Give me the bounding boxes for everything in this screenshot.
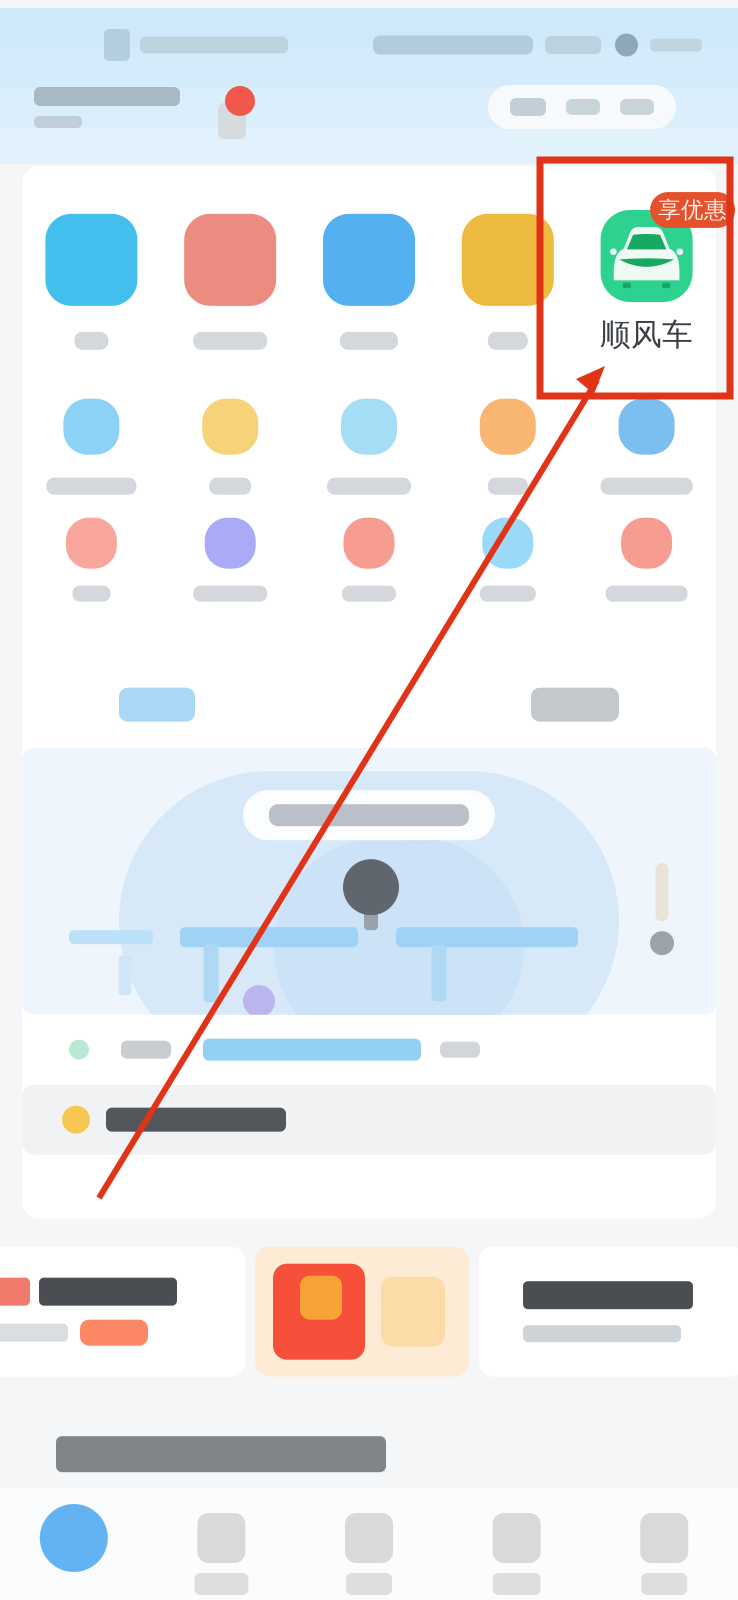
- button[interactable]: 享优惠: [577, 210, 716, 354]
- button[interactable]: [438, 399, 577, 495]
- button[interactable]: [0, 1247, 245, 1377]
- button[interactable]: [22, 399, 161, 495]
- button[interactable]: [577, 518, 716, 602]
- button[interactable]: [438, 214, 577, 350]
- staticText: 顺风车: [600, 316, 693, 354]
- button[interactable]: [300, 399, 438, 495]
- button[interactable]: [300, 518, 438, 602]
- button[interactable]: [255, 1247, 469, 1377]
- button[interactable]: [438, 518, 577, 602]
- button[interactable]: Orders: [295, 1488, 443, 1600]
- staticText: 享优惠: [658, 196, 727, 224]
- button[interactable]: [479, 1247, 738, 1377]
- button[interactable]: [22, 518, 161, 602]
- button[interactable]: [161, 399, 300, 495]
- button[interactable]: Home: [0, 1488, 148, 1600]
- button[interactable]: [22, 214, 161, 350]
- button[interactable]: [300, 214, 438, 350]
- button[interactable]: [577, 399, 716, 495]
- button[interactable]: Messages: [443, 1488, 590, 1600]
- button[interactable]: [161, 214, 300, 350]
- button[interactable]: Profile: [590, 1488, 738, 1600]
- button[interactable]: Nearby: [148, 1488, 295, 1600]
- button[interactable]: [161, 518, 300, 602]
